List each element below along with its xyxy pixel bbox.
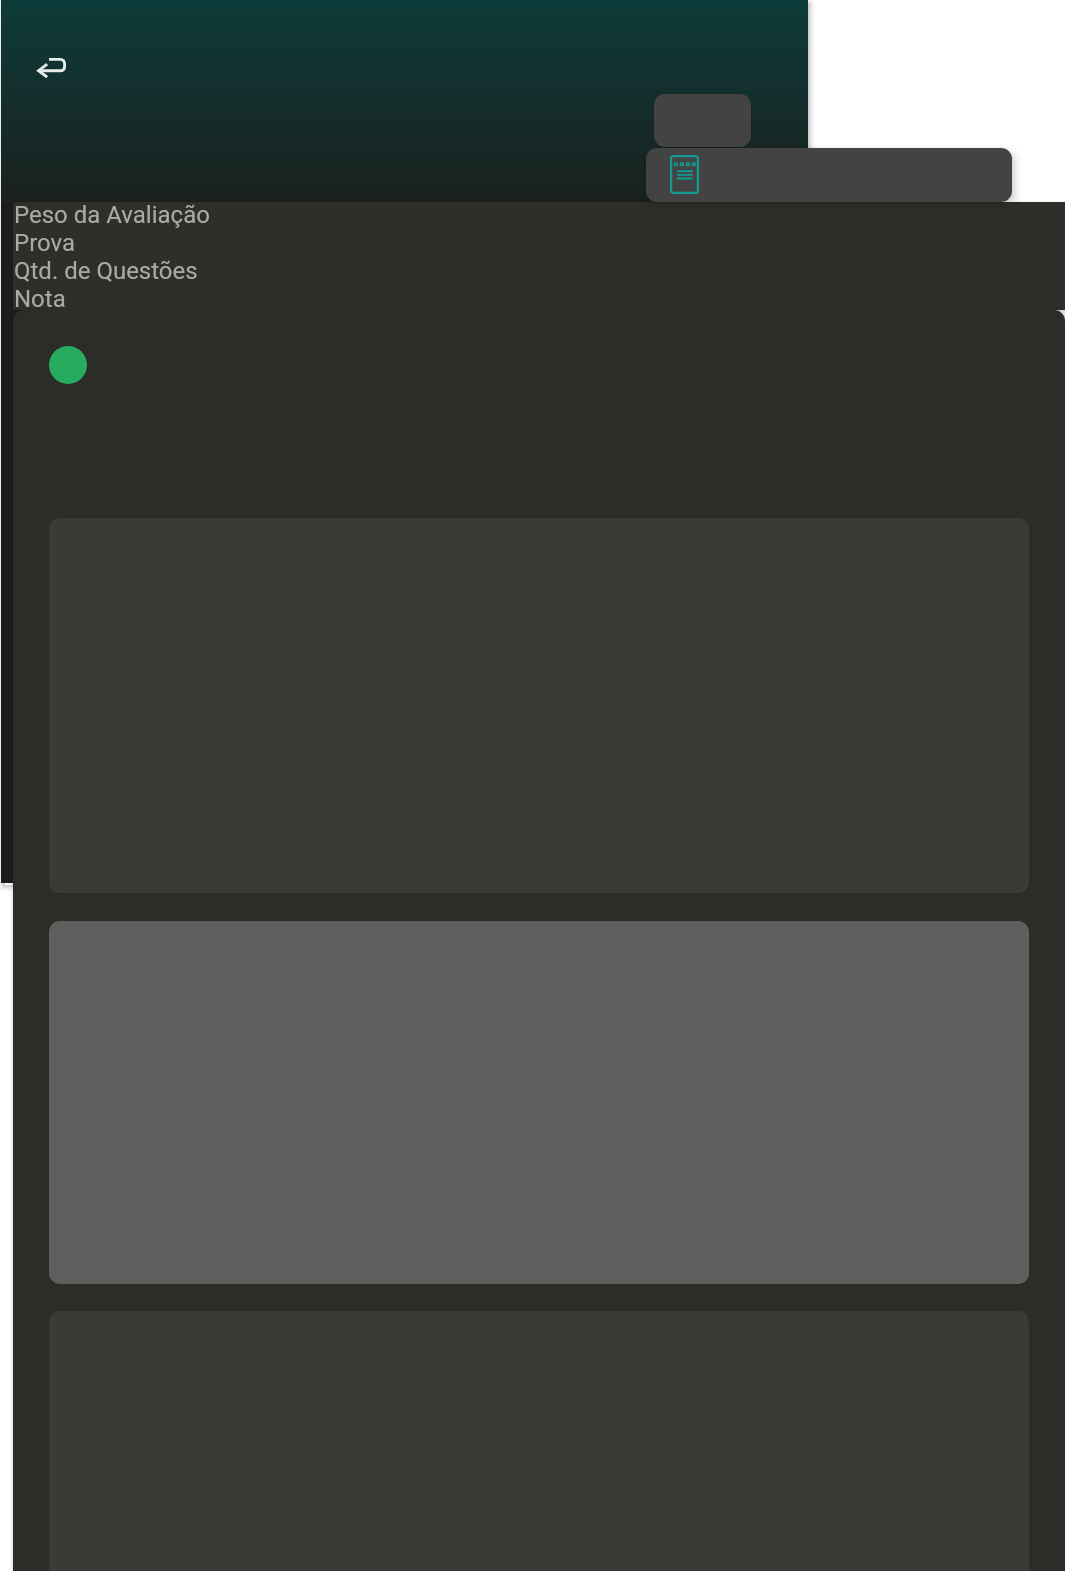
button[interactable]: Avaliação — [654, 94, 751, 147]
button[interactable]: Prova — [646, 148, 1012, 202]
button[interactable]: Voltar — [27, 43, 75, 91]
staticText: Qtd. de Questões — [14, 257, 198, 285]
staticText: Nota — [14, 285, 66, 309]
staticText: Prova — [14, 229, 76, 257]
staticText: Peso da Avaliação — [14, 202, 210, 229]
